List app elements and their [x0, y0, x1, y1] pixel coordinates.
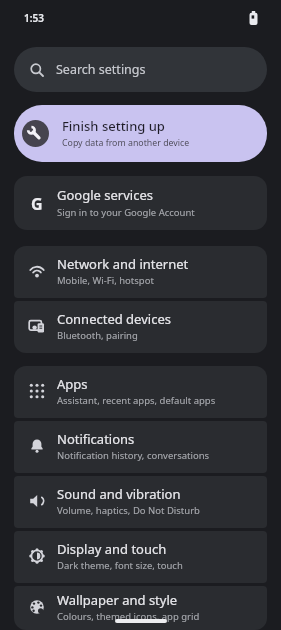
button[interactable]: Finish setting up	[14, 105, 267, 162]
staticText: Finish setting up	[62, 117, 165, 135]
staticText: Dark theme, font size, touch	[57, 559, 183, 572]
staticText: Notification history, conversations	[57, 449, 210, 462]
staticText: Volume, haptics, Do Not Disturb	[57, 504, 200, 517]
staticText: G	[31, 193, 43, 213]
button[interactable]: Connected devices	[14, 301, 267, 353]
button[interactable]: Apps	[14, 366, 267, 418]
button[interactable]: Sound and vibration	[14, 476, 267, 528]
button[interactable]: Notifications	[14, 421, 267, 473]
staticText: Connected devices	[57, 310, 171, 328]
staticText: 1:53	[24, 11, 44, 25]
button[interactable]: Search settings	[14, 47, 267, 92]
button[interactable]: Wallpaper and style	[14, 586, 267, 630]
staticText: Network and internet	[57, 255, 189, 273]
button[interactable]: Network and internet	[14, 246, 267, 298]
staticText: Assistant, recent apps, default apps	[57, 394, 216, 407]
button[interactable]: G	[14, 176, 267, 230]
staticText: Search settings	[56, 61, 146, 78]
staticText: Google services	[57, 186, 153, 204]
staticText: Copy data from another device	[62, 137, 190, 149]
staticText: Display and touch	[57, 540, 167, 558]
staticText: Wallpaper and style	[57, 591, 178, 609]
staticText: Notifications	[57, 430, 135, 448]
staticText: Mobile, Wi-Fi, hotspot	[57, 274, 154, 287]
staticText: Sound and vibration	[57, 485, 181, 503]
staticText: Colours, themed icons, app grid	[57, 610, 200, 623]
staticText: Bluetooth, pairing	[57, 329, 138, 342]
button[interactable]: Display and touch	[14, 531, 267, 583]
staticText: Sign in to your Google Account	[57, 206, 195, 219]
staticText: Apps	[57, 375, 88, 393]
